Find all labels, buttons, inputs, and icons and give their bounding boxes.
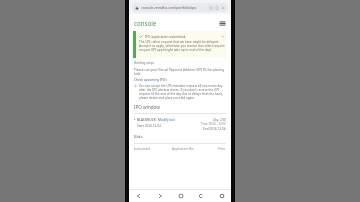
button[interactable]: Forward	[154, 190, 165, 201]
staticText: Instrument	[134, 147, 172, 151]
button[interactable]: Check upcoming IPOs	[134, 78, 167, 82]
other: Reload	[209, 6, 213, 10]
button[interactable]: ×	[222, 34, 225, 39]
staticText: You can accept the UPI mandate request t…	[139, 84, 226, 100]
staticText: The UPI collect request that we have mig…	[139, 40, 225, 52]
staticText: Price 18.00 - 30.00	[201, 122, 226, 126]
button[interactable]: Tabs	[216, 190, 227, 201]
other: Menu	[221, 6, 225, 10]
button[interactable]: Back	[133, 190, 144, 201]
button[interactable]: Reload	[195, 190, 206, 201]
staticText: Bids	[134, 134, 143, 140]
staticText: Price	[218, 147, 226, 151]
button[interactable]: ▸	[134, 117, 226, 131]
staticText: Please use your Virtual Payment Address …	[134, 68, 226, 76]
staticText: Application No.	[172, 147, 218, 151]
staticText: End 2024-12-04	[203, 127, 226, 131]
staticText: Start 2024-12-02	[137, 124, 161, 128]
staticText: BLACKBUCK	[137, 117, 156, 121]
button[interactable]: IPO application submitted.	[133, 31, 227, 58]
staticText: Qty. 230	[213, 117, 226, 121]
staticText: IPO application submitted.	[145, 34, 187, 38]
button[interactable]: console	[134, 19, 157, 27]
staticText: ▸	[134, 117, 136, 120]
staticText: console.zerodha.com/portfolio/ipo	[141, 5, 209, 10]
button[interactable]: Modify bid	[158, 117, 175, 121]
button[interactable]: console.zerodha.com/portfolio/ipo	[132, 3, 228, 12]
button[interactable]: Menu	[218, 19, 226, 27]
other: Bookmark	[215, 6, 219, 10]
staticText: IPO window	[134, 104, 160, 110]
button[interactable]: Home	[175, 190, 186, 201]
staticText: Holding steps	[134, 61, 155, 65]
